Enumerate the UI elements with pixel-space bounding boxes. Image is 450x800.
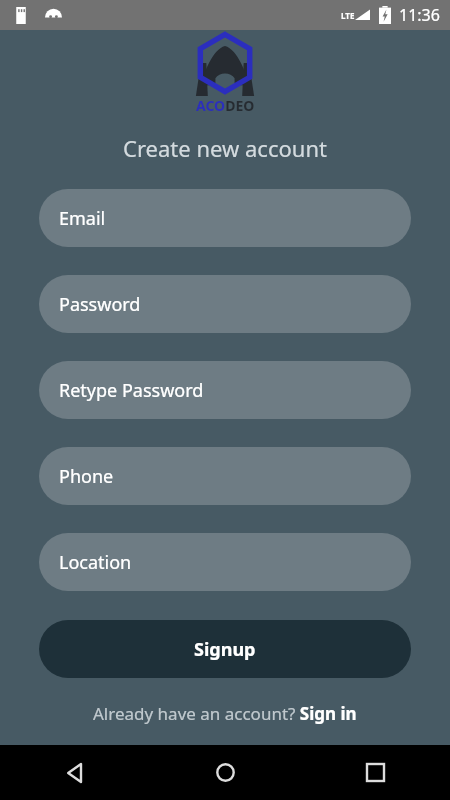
button[interactable]: Recent apps — [300, 745, 450, 800]
button[interactable]: Home — [150, 745, 300, 800]
staticText: 11:36 — [399, 4, 440, 26]
staticText: Create new account — [123, 133, 327, 163]
button[interactable]: Retype Password — [39, 361, 411, 419]
button[interactable]: Email — [39, 189, 411, 247]
staticText: Retype Password — [59, 378, 204, 403]
staticText: Location — [59, 550, 132, 575]
staticText: Password — [59, 292, 141, 317]
staticText: Signup — [194, 637, 256, 662]
staticText: Already have an account? Sign in — [93, 702, 357, 725]
button[interactable]: Already have an account? Sign in — [81, 698, 369, 729]
button[interactable]: Phone — [39, 447, 411, 505]
button[interactable]: Signup — [39, 620, 411, 678]
button[interactable]: Location — [39, 533, 411, 591]
staticText: LTE — [341, 10, 355, 21]
staticText: Email — [59, 206, 106, 231]
staticText: Phone — [59, 464, 114, 489]
staticText: ACODEO — [196, 96, 255, 115]
button[interactable]: Password — [39, 275, 411, 333]
button[interactable]: Back — [0, 745, 150, 800]
